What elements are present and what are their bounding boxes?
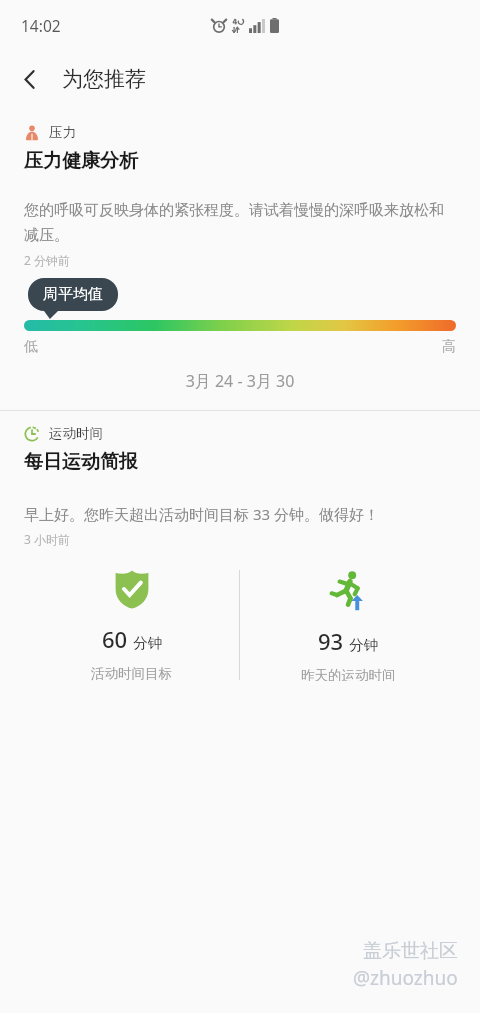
staticText: 93 <box>318 626 344 656</box>
staticText: 2 分钟前 <box>24 252 70 268</box>
staticText: 压力 <box>49 124 76 141</box>
button[interactable]: 返回 <box>8 57 52 101</box>
staticText: 压力健康分析 <box>24 149 138 173</box>
button[interactable]: 60 <box>24 569 239 681</box>
staticText: 分钟 <box>133 634 162 652</box>
staticText: 活动时间目标 <box>91 665 172 681</box>
button[interactable]: 压力 <box>0 108 480 410</box>
button[interactable]: 93 <box>240 569 456 681</box>
staticText: 分钟 <box>349 636 378 654</box>
staticText: 低 <box>24 338 38 356</box>
staticText: 盖乐世社区 <box>363 939 458 963</box>
staticText: 60 <box>102 624 128 654</box>
staticText: 3月 24 - 3月 30 <box>24 370 456 392</box>
staticText: 高 <box>442 338 456 356</box>
staticText: 早上好。您昨天超出活动时间目标 33 分钟。做得好！ <box>24 504 379 524</box>
staticText: @zhuozhuo <box>353 965 458 991</box>
staticText: 14:02 <box>21 15 61 36</box>
staticText: 昨天的运动时间 <box>301 667 396 681</box>
staticText: 3 小时前 <box>24 531 70 547</box>
button[interactable]: 运动时间 <box>0 411 480 681</box>
staticText: 每日运动简报 <box>24 450 138 474</box>
staticText: 运动时间 <box>49 425 103 442</box>
staticText: 为您推荐 <box>62 66 146 92</box>
staticText: 周平均值 <box>43 285 103 304</box>
staticText: 您的呼吸可反映身体的紧张程度。请试着慢慢的深呼吸来放松和减压。 <box>24 201 456 244</box>
